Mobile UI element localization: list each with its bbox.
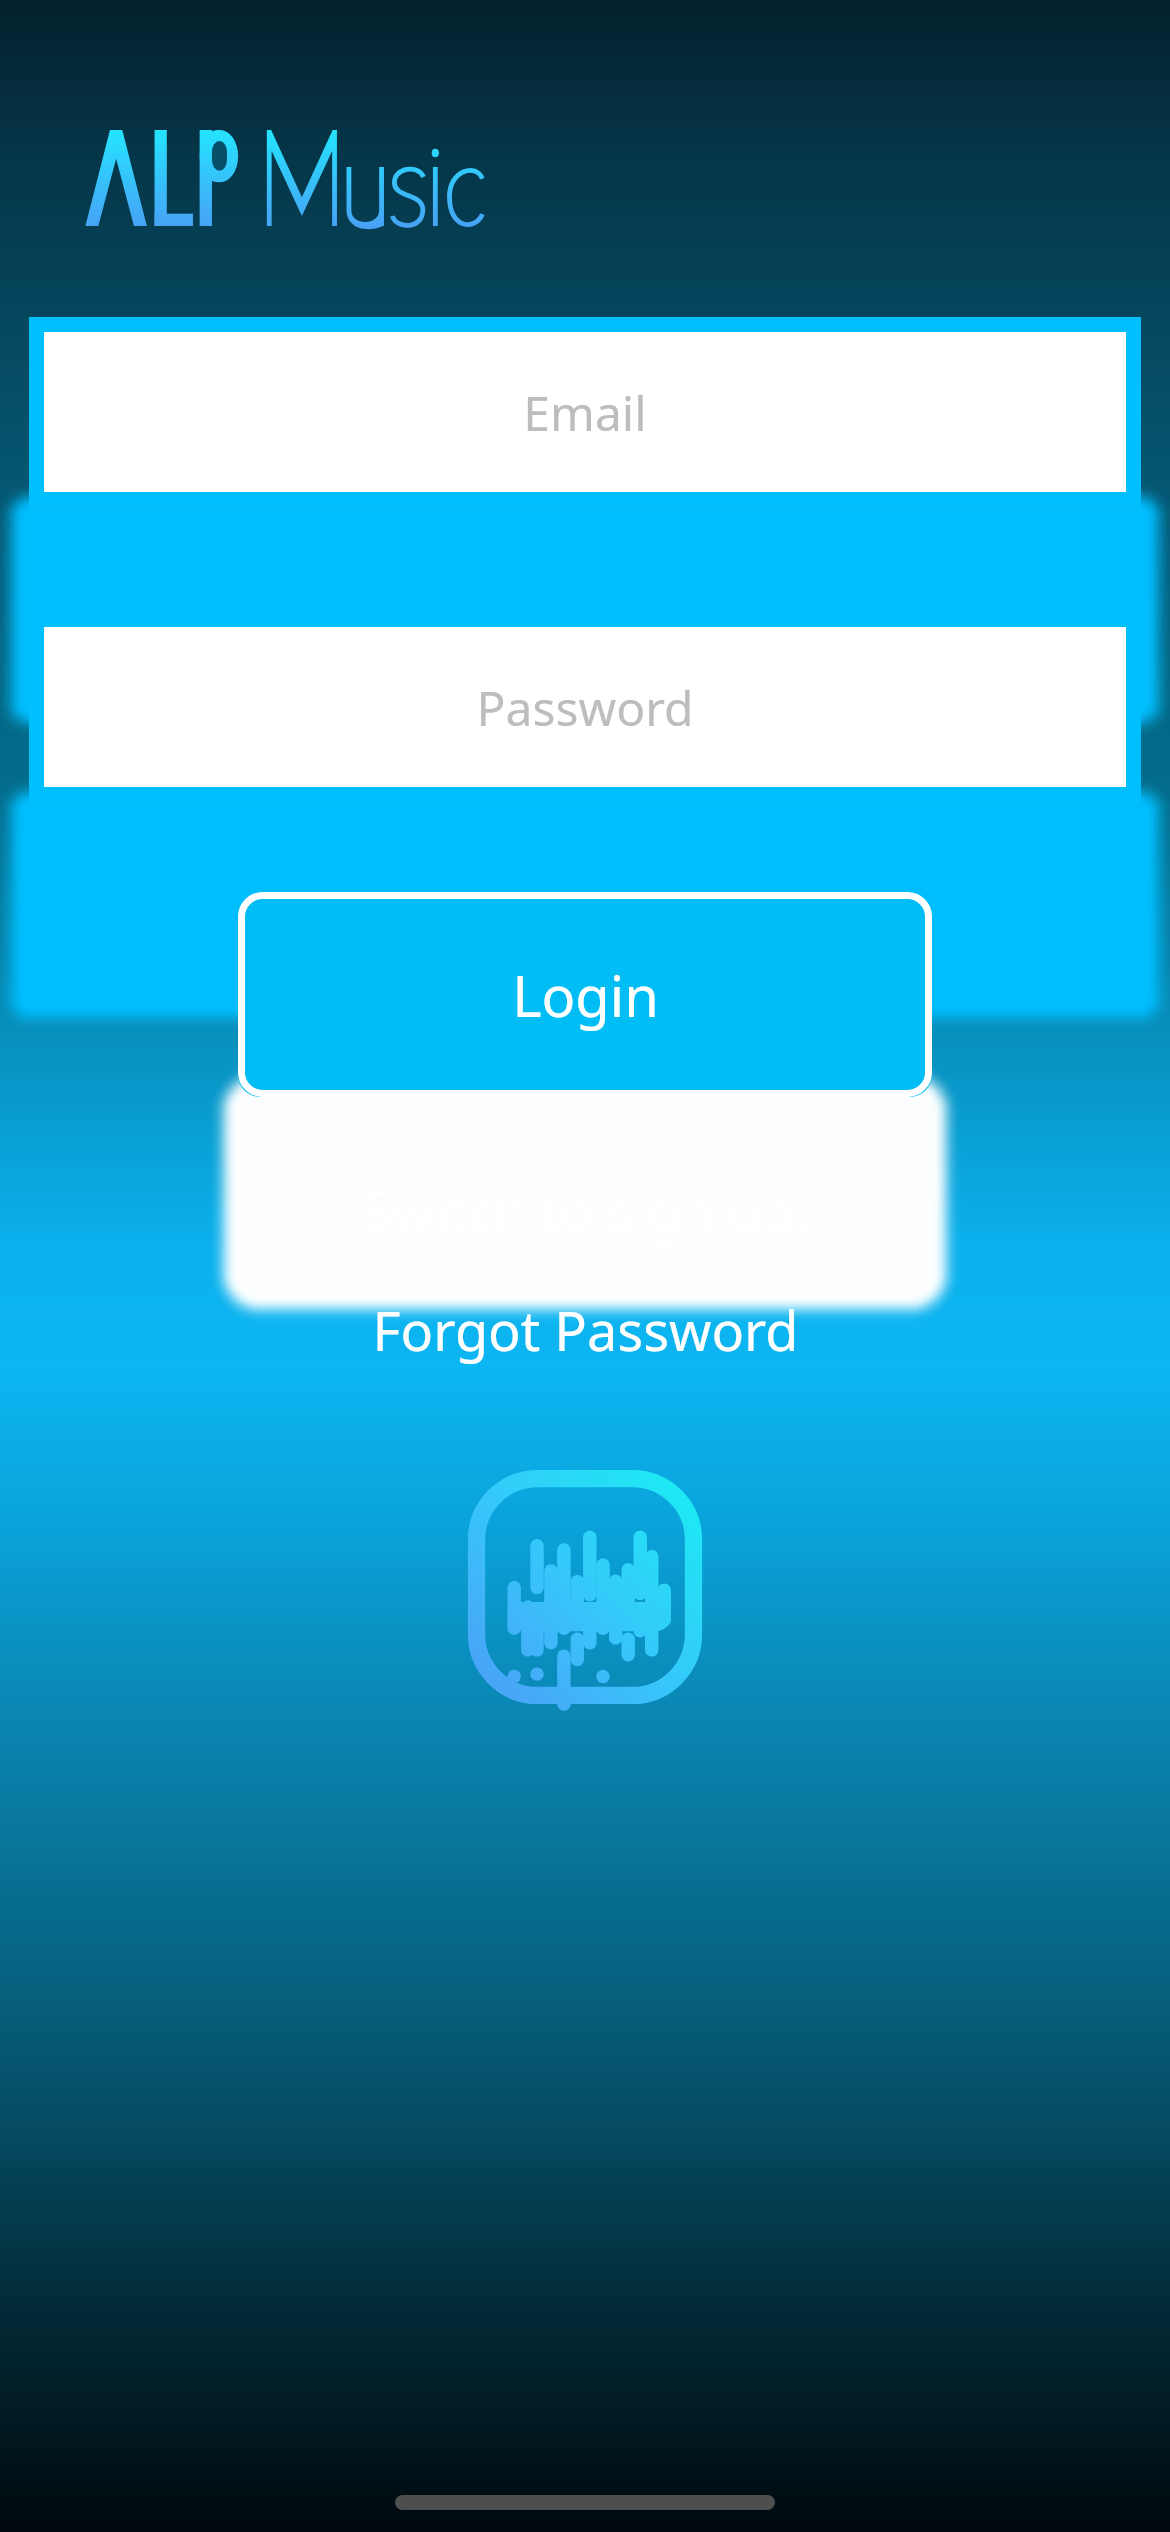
button[interactable]: Forgot Password [350, 1285, 821, 1375]
button[interactable]: Login [238, 892, 932, 1097]
staticText: Login [512, 957, 659, 1033]
staticText: Forgot Password [372, 1293, 799, 1367]
button[interactable]: Password [29, 612, 1141, 802]
staticText: Password [476, 675, 694, 740]
button[interactable]: ALP Music app icon [465, 1467, 705, 1707]
button[interactable]: Email [29, 317, 1141, 507]
staticText: Email [523, 380, 647, 445]
